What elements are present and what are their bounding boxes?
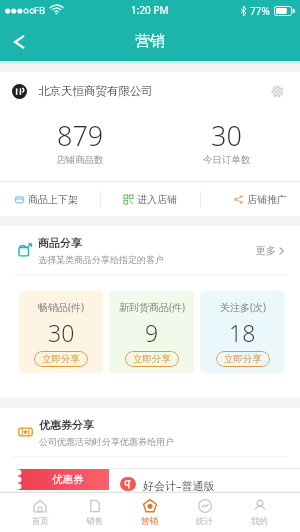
staticText: 879 — [57, 117, 104, 154]
button[interactable]: 销售 — [67, 493, 122, 532]
button[interactable]: 立即分享 — [34, 351, 88, 367]
staticText: 9 — [145, 317, 159, 348]
button[interactable]: 更多 — [252, 240, 288, 261]
staticText: 1:20 PM — [131, 3, 169, 17]
staticText: 立即分享 — [42, 353, 80, 365]
staticText: 进入店铺 — [137, 193, 177, 206]
staticText: 关注多(次) — [220, 300, 266, 314]
staticText: 优惠券分享 — [39, 418, 94, 432]
staticText: 更多 — [256, 244, 276, 257]
button[interactable]: 畅销品(件) — [19, 291, 103, 373]
button[interactable]: Back — [0, 22, 38, 61]
button[interactable]: 立即分享 — [125, 351, 179, 367]
staticText: 首页 — [32, 516, 49, 527]
button[interactable]: 进入店铺 — [101, 182, 200, 216]
staticText: 商品上下架 — [28, 193, 78, 206]
staticText: 新到货商品(件) — [119, 300, 185, 314]
button[interactable]: Settings — [264, 78, 290, 104]
staticText: 营销 — [141, 516, 158, 527]
staticText: 统计 — [196, 516, 213, 527]
staticText: 营销 — [135, 32, 165, 51]
staticText: 立即分享 — [133, 353, 171, 365]
staticText: 选择某类商品分享给指定的客户 — [38, 254, 164, 265]
staticText: 店铺商品数 — [56, 154, 104, 166]
staticText: 立即分享 — [224, 353, 262, 365]
staticText: 优惠券 — [52, 473, 84, 486]
staticText: 商品分享 — [38, 236, 82, 250]
button[interactable]: 立即分享 — [216, 351, 270, 367]
button[interactable]: 首页 — [13, 493, 67, 532]
staticText: 我的 — [251, 516, 268, 527]
staticText: 今日订单数 — [203, 154, 251, 166]
staticText: 18 — [229, 317, 256, 348]
button[interactable]: 关注多(次) — [200, 291, 285, 373]
staticText: FB — [34, 4, 46, 17]
staticText: 30 — [48, 317, 75, 348]
staticText: 公司优惠活动时分享优惠券给用户 — [39, 436, 174, 447]
staticText: 好会计–普通版 — [143, 478, 215, 492]
button[interactable]: 新到货商品(件) — [109, 291, 194, 373]
staticText: 北京天恒商贸有限公司 — [38, 84, 153, 98]
button[interactable]: 店铺推广 — [201, 182, 300, 216]
staticText: 77% — [250, 4, 270, 18]
button[interactable]: 统计 — [177, 493, 232, 532]
staticText: 销售 — [86, 516, 103, 527]
button[interactable]: 我的 — [232, 493, 287, 532]
button[interactable]: 商品上下架 — [2, 182, 100, 216]
staticText: 畅销品(件) — [38, 300, 84, 314]
button[interactable]: 营销 — [122, 493, 177, 532]
button[interactable]: 879 — [7, 110, 153, 181]
staticText: 店铺推广 — [247, 193, 287, 206]
staticText: 30 — [211, 117, 242, 154]
button[interactable]: 30 — [153, 110, 300, 181]
